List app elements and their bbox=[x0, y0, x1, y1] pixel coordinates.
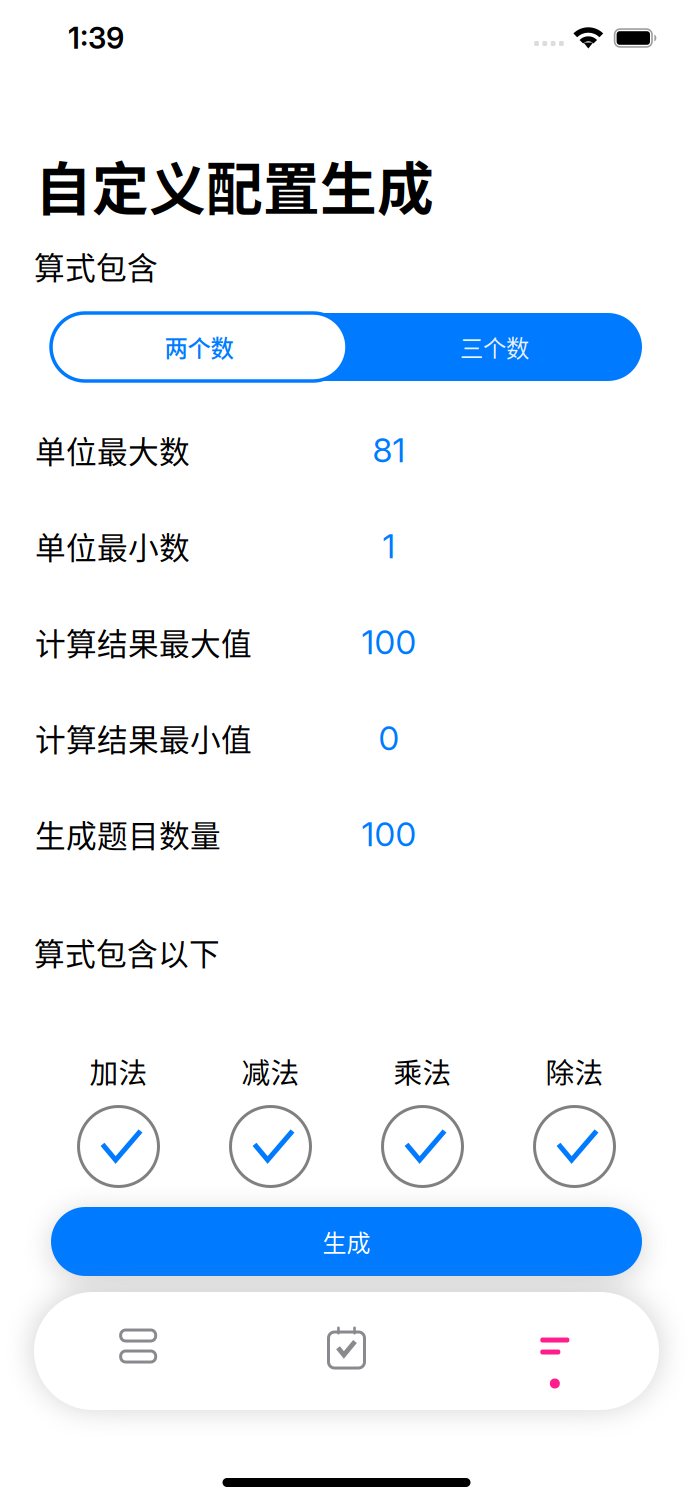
staticText: 算式包含以下 bbox=[34, 930, 220, 974]
button[interactable]: 单位最小数 bbox=[0, 498, 693, 594]
staticText: 减法 bbox=[241, 1050, 299, 1092]
button[interactable]: 两个数 bbox=[51, 313, 347, 381]
staticText: 100 bbox=[361, 622, 416, 662]
staticText: 加法 bbox=[89, 1050, 147, 1092]
staticText: 除法 bbox=[545, 1050, 603, 1092]
staticText: 100 bbox=[361, 814, 416, 854]
button[interactable]: Flashcards bbox=[34, 1323, 242, 1379]
staticText: 单位最小数 bbox=[35, 524, 190, 568]
staticText: 两个数 bbox=[164, 330, 233, 364]
button[interactable]: 计算结果最大值 bbox=[0, 594, 693, 690]
staticText: 1 bbox=[382, 526, 395, 566]
button[interactable]: 计算结果最小值 bbox=[0, 690, 693, 786]
button[interactable]: 单位最大数 bbox=[0, 402, 693, 498]
button[interactable]: 生成 bbox=[51, 1207, 642, 1276]
staticText: 1:39 bbox=[68, 20, 124, 56]
staticText: 自定义配置生成 bbox=[35, 144, 434, 226]
button[interactable]: Settings bbox=[451, 1305, 659, 1396]
staticText: 81 bbox=[372, 430, 405, 470]
staticText: 生成 bbox=[322, 1224, 370, 1259]
button[interactable]: 三个数 bbox=[347, 313, 642, 381]
staticText: 三个数 bbox=[460, 330, 529, 364]
staticText: 计算结果最大值 bbox=[35, 620, 252, 664]
button[interactable]: 加法 bbox=[68, 1056, 168, 1188]
staticText: 计算结果最小值 bbox=[35, 716, 252, 760]
staticText: 单位最大数 bbox=[35, 428, 190, 472]
staticText: 生成题目数量 bbox=[35, 812, 221, 856]
staticText: 0 bbox=[378, 718, 399, 758]
staticText: 乘法 bbox=[393, 1050, 451, 1092]
button[interactable]: 除法 bbox=[524, 1056, 624, 1188]
button[interactable]: Practice bbox=[242, 1326, 451, 1375]
button[interactable]: 减法 bbox=[220, 1056, 320, 1188]
staticText: 算式包含 bbox=[34, 244, 158, 288]
button[interactable]: 乘法 bbox=[372, 1056, 472, 1188]
button[interactable]: 生成题目数量 bbox=[0, 786, 693, 882]
